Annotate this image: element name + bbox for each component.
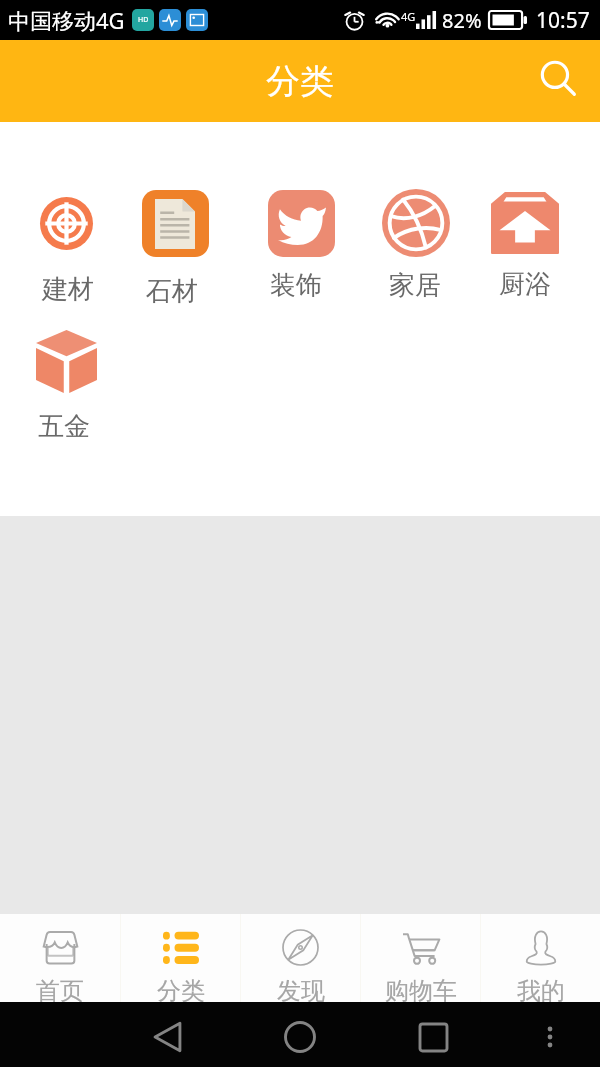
button[interactable]: Category: [268, 190, 335, 257]
staticText: 10:57: [536, 6, 590, 35]
button[interactable]: Category: [40, 197, 93, 250]
staticText: 发现: [277, 976, 325, 1002]
button[interactable]: Home: [278, 1015, 322, 1059]
staticText: 家居: [389, 269, 441, 302]
staticText: 中国移动4G: [8, 5, 125, 35]
button[interactable]: 首页: [0, 914, 120, 1002]
button[interactable]: 发现: [241, 914, 360, 1002]
staticText: 厨浴: [499, 268, 551, 301]
staticText: 五金: [38, 410, 90, 443]
staticText: 首页: [36, 976, 84, 1002]
button[interactable]: 我的: [481, 914, 600, 1002]
staticText: 分类: [266, 60, 334, 103]
button[interactable]: More options: [528, 1015, 572, 1059]
button[interactable]: Category: [142, 190, 209, 257]
staticText: 82%: [442, 7, 482, 34]
button[interactable]: 分类: [121, 914, 240, 1002]
button[interactable]: Search: [533, 54, 587, 108]
button[interactable]: Category: [491, 192, 559, 254]
button[interactable]: Recent apps: [411, 1015, 455, 1059]
button[interactable]: Category: [36, 330, 97, 393]
staticText: 4G: [401, 9, 416, 24]
staticText: 我的: [517, 976, 565, 1002]
staticText: HD: [138, 15, 149, 25]
staticText: 装饰: [270, 269, 322, 302]
staticText: 石材: [146, 275, 198, 308]
staticText: 购物车: [385, 976, 457, 1002]
button[interactable]: Category: [382, 189, 450, 257]
staticText: 分类: [157, 976, 205, 1002]
staticText: 建材: [42, 273, 94, 306]
button[interactable]: Back: [145, 1015, 189, 1059]
button[interactable]: 购物车: [361, 914, 480, 1002]
